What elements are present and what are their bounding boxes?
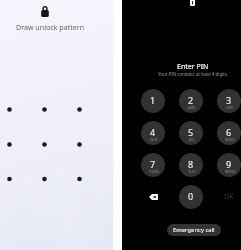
- staticText: 4: [150, 126, 156, 138]
- staticText: OK: [224, 192, 234, 202]
- staticText: 5: [188, 126, 194, 138]
- staticText: ABC: [188, 105, 196, 110]
- staticText: WXYZ: [225, 169, 236, 174]
- staticText: Enter PIN: [177, 62, 209, 72]
- button[interactable]: 3: [217, 89, 241, 113]
- button[interactable]: Delete: [141, 185, 165, 209]
- button[interactable]: 4: [141, 121, 165, 145]
- staticText: Draw unlock pattern: [16, 22, 85, 32]
- staticText: DEF: [226, 105, 234, 110]
- button[interactable]: 2: [179, 89, 203, 113]
- button[interactable]: 0: [179, 185, 203, 209]
- staticText: PQRS: [149, 169, 160, 174]
- staticText: Your PIN contains at least 4 digits.: [158, 71, 229, 77]
- staticText: 3: [226, 94, 232, 106]
- button[interactable]: 8: [179, 153, 203, 177]
- button[interactable]: 9: [217, 153, 241, 177]
- staticText: JKL: [189, 137, 195, 142]
- staticText: TUV: [188, 169, 196, 174]
- staticText: 2: [188, 94, 194, 106]
- button[interactable]: 7: [141, 153, 165, 177]
- button[interactable]: 6: [217, 121, 241, 145]
- staticText: MNO: [225, 137, 235, 142]
- staticText: 6: [226, 126, 232, 138]
- button[interactable]: OK: [217, 185, 241, 209]
- staticText: Emergency call: [173, 226, 215, 234]
- staticText: 0: [188, 190, 194, 202]
- staticText: GHI: [150, 137, 158, 142]
- button[interactable]: 1: [141, 89, 165, 113]
- button[interactable]: Emergency call: [167, 224, 221, 236]
- button[interactable]: 5: [179, 121, 203, 145]
- staticText: 8: [188, 158, 194, 170]
- staticText: 7: [150, 158, 156, 170]
- staticText: 9: [226, 158, 232, 170]
- staticText: 1: [150, 94, 156, 106]
